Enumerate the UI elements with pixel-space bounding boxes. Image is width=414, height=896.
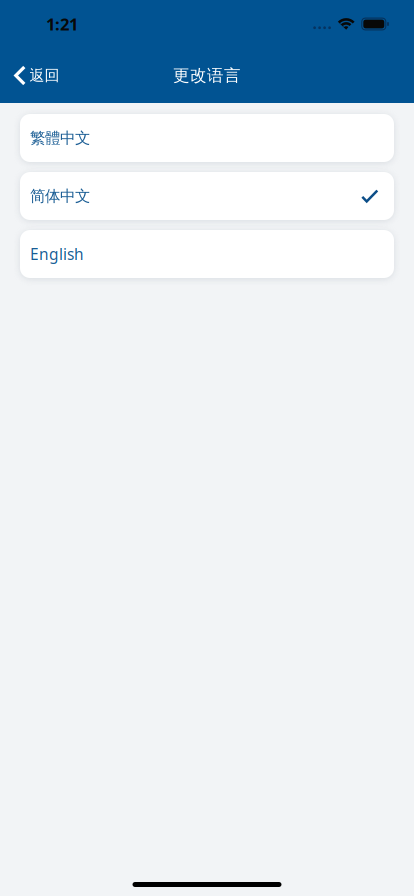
button[interactable]: 返回 — [0, 53, 71, 97]
staticText: 繁體中文 — [30, 128, 90, 148]
button[interactable]: 繁體中文 — [20, 114, 394, 162]
button[interactable]: English — [20, 230, 394, 278]
staticText: 更改语言 — [173, 65, 241, 86]
staticText: 返回 — [29, 66, 59, 85]
staticText: 简体中文 — [30, 186, 90, 206]
staticText: 1:21 — [46, 13, 78, 35]
staticText: English — [30, 243, 84, 264]
button[interactable]: 简体中文 — [20, 172, 394, 220]
